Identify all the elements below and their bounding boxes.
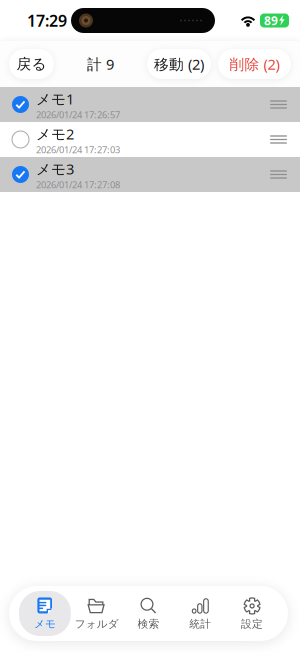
staticText: 2026/01/24 17:27:08 [36, 178, 120, 191]
staticText: 統計 [189, 617, 211, 630]
button[interactable]: 検索 [123, 591, 174, 636]
button[interactable]: 戻る [9, 49, 54, 79]
button[interactable]: 統計 [174, 591, 226, 636]
button[interactable]: 削除 (2) [218, 49, 291, 79]
button[interactable]: メモ1 [0, 87, 300, 122]
staticText: 削除 (2) [229, 54, 279, 74]
staticText: メモ [34, 617, 56, 630]
staticText: 2026/01/24 17:26:57 [36, 108, 120, 121]
button[interactable]: メモ [19, 591, 71, 636]
staticText: メモ1 [36, 89, 74, 109]
staticText: 2026/01/24 17:27:03 [36, 143, 120, 156]
button[interactable]: メモ3 [0, 157, 300, 192]
staticText: 17:29 [27, 10, 67, 31]
staticText: 移動 (2) [154, 54, 204, 74]
button[interactable]: 設定 [226, 591, 278, 636]
staticText: 検索 [137, 617, 159, 630]
button[interactable]: 移動 (2) [147, 49, 211, 79]
staticText: メモ2 [36, 124, 74, 144]
staticText: 戻る [16, 55, 46, 73]
staticText: メモ3 [36, 159, 74, 179]
staticText: 設定 [241, 617, 263, 630]
button[interactable]: フォルダ [71, 591, 123, 636]
staticText: 89 [264, 12, 278, 28]
button[interactable]: メモ2 [0, 122, 300, 157]
staticText: 計 9 [87, 54, 114, 74]
staticText: フォルダ [75, 617, 119, 630]
